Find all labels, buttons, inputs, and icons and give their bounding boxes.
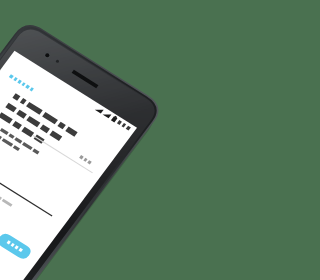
button[interactable]: Cancel <box>52 68 78 80</box>
button[interactable]: Loan amount input <box>108 128 194 148</box>
